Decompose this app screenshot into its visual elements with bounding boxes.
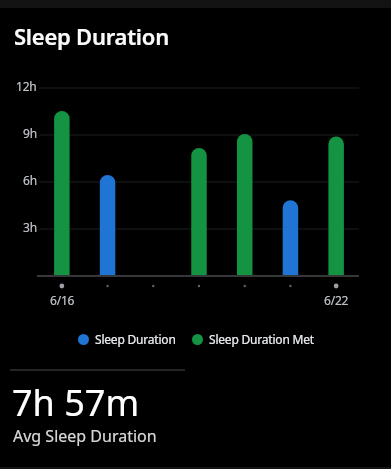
staticText: 9h: [23, 125, 37, 141]
staticText: 7h 57m: [12, 378, 140, 427]
staticText: Sleep Duration Met: [209, 331, 314, 347]
staticText: 12h: [16, 78, 37, 94]
staticText: 6h: [23, 172, 37, 188]
button[interactable]: Sleep Duration: [78, 331, 176, 347]
button[interactable]: Sleep Duration Met: [192, 331, 314, 347]
staticText: Sleep Duration: [14, 21, 169, 51]
staticText: 6/22: [324, 292, 349, 308]
staticText: 6/16: [50, 292, 75, 308]
staticText: 3h: [23, 219, 37, 235]
staticText: Avg Sleep Duration: [13, 425, 157, 447]
staticText: Sleep Duration: [95, 331, 176, 347]
